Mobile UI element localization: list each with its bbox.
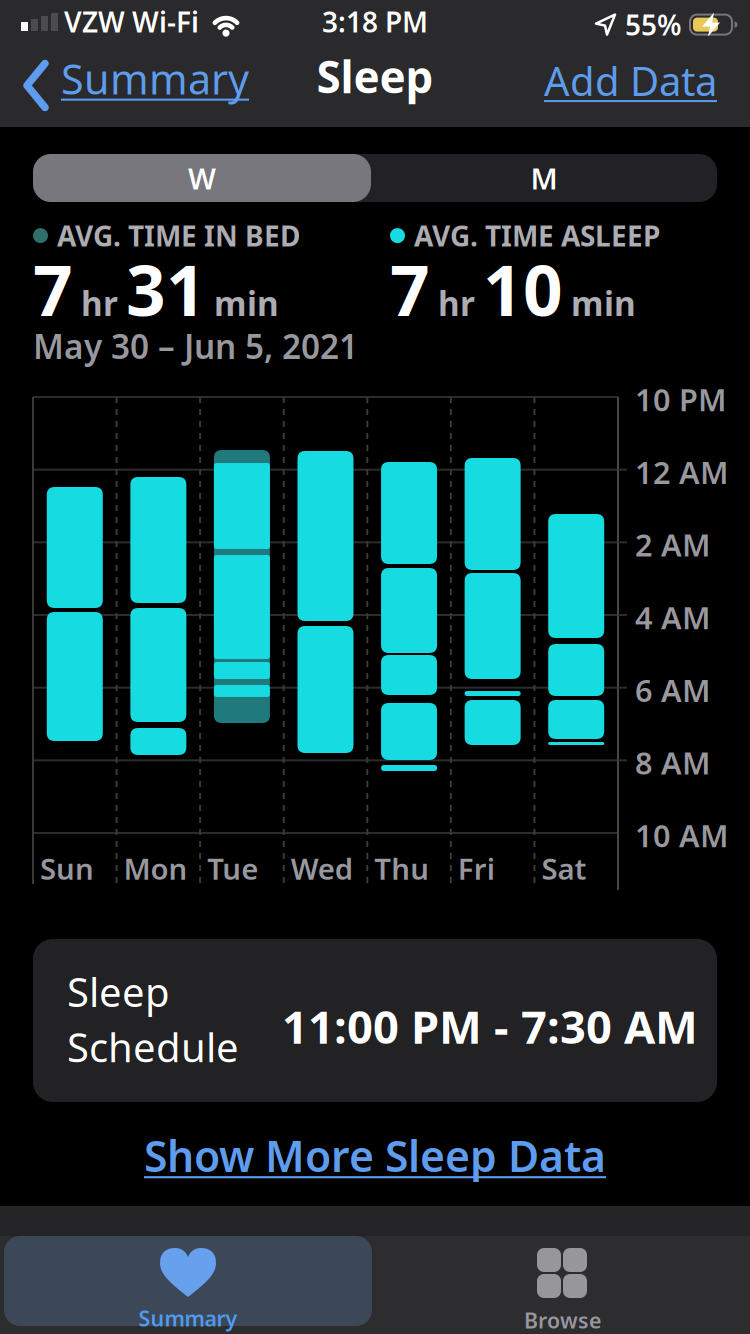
staticText: 3:18 PM [322, 3, 428, 40]
staticText: Sat [541, 849, 586, 888]
staticText: Mon [124, 849, 188, 888]
staticText: Tue [207, 849, 258, 888]
staticText: min [571, 281, 636, 325]
staticText: Thu [374, 849, 429, 888]
staticText: AVG. TIME ASLEEP [414, 217, 660, 254]
staticText: 4 AM [635, 597, 710, 638]
button[interactable]: Sleep [33, 939, 717, 1102]
staticText: 12 AM [635, 452, 728, 492]
staticText: Fri [458, 849, 495, 888]
staticText: 10 [483, 243, 563, 335]
staticText: 10 PM [635, 379, 726, 420]
staticText: min [214, 281, 279, 325]
staticText: Sleep [316, 47, 433, 105]
staticText: 7 [33, 243, 73, 335]
staticText: Schedule [67, 1020, 239, 1073]
staticText: 7 [390, 243, 430, 335]
staticText: 11:00 PM - 7:30 AM [282, 996, 698, 1056]
staticText: M [530, 158, 557, 197]
button[interactable]: Show More Sleep Data [144, 1127, 606, 1184]
button[interactable]: Summary [23, 51, 249, 106]
staticText: Summary [138, 1304, 237, 1332]
staticText: 6 AM [635, 670, 710, 710]
staticText: May 30 – Jun 5, 2021 [33, 324, 358, 368]
button[interactable]: Summary [4, 1236, 372, 1326]
staticText: 55% [625, 6, 682, 43]
staticText: Summary [61, 51, 249, 106]
staticText: hr [81, 281, 118, 325]
staticText: Sun [40, 849, 94, 888]
staticText: VZW Wi-Fi [64, 3, 199, 40]
staticText: 8 AM [635, 742, 710, 783]
staticText: Sleep [67, 965, 170, 1018]
button[interactable]: Add Data [544, 54, 717, 107]
staticText: Wed [291, 849, 353, 888]
staticText: Browse [524, 1306, 601, 1334]
staticText: 31 [126, 243, 206, 335]
staticText: 2 AM [635, 524, 710, 565]
staticText: 10 AM [635, 815, 728, 856]
staticText: Show More Sleep Data [144, 1127, 606, 1184]
staticText: W [188, 158, 216, 197]
button[interactable]: M [371, 154, 717, 202]
button[interactable]: Browse [375, 1238, 750, 1334]
staticText: Add Data [544, 54, 717, 107]
button[interactable]: W [33, 154, 371, 202]
staticText: hr [438, 281, 475, 325]
staticText: AVG. TIME IN BED [57, 217, 300, 254]
